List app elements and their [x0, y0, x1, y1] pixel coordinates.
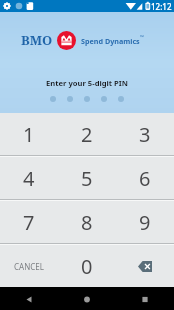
staticText: 12:12 — [151, 1, 172, 12]
staticText: 8 — [81, 209, 93, 236]
staticText: 1 — [23, 121, 35, 148]
button[interactable]: Home — [58, 287, 116, 310]
staticText: 7 — [23, 209, 35, 236]
button[interactable]: 9 — [116, 201, 174, 243]
button[interactable]: 1 — [0, 113, 58, 155]
button[interactable]: 7 — [0, 201, 58, 243]
button[interactable]: Back — [0, 287, 58, 310]
staticText: 6 — [139, 165, 151, 192]
staticText: 3 — [139, 121, 151, 148]
button[interactable]: 4 — [0, 157, 58, 199]
staticText: Enter your 5-digit PIN — [46, 78, 128, 88]
staticText: 5 — [81, 165, 93, 192]
button[interactable]: Recent apps — [116, 287, 174, 310]
button[interactable]: Backspace — [116, 245, 174, 287]
staticText: BMO — [21, 31, 53, 49]
staticText: CANCEL — [14, 261, 44, 272]
button[interactable]: 0 — [58, 245, 116, 287]
button[interactable]: 8 — [58, 201, 116, 243]
staticText: 0 — [81, 253, 93, 280]
staticText: ™ — [140, 34, 144, 41]
button[interactable]: 5 — [58, 157, 116, 199]
staticText: 9 — [139, 209, 151, 236]
staticText: 4 — [23, 165, 35, 192]
button[interactable]: 2 — [58, 113, 116, 155]
button[interactable]: CANCEL — [0, 245, 58, 287]
button[interactable]: 3 — [116, 113, 174, 155]
staticText: Spend Dynamics — [81, 36, 140, 46]
button[interactable]: 6 — [116, 157, 174, 199]
staticText: 2 — [81, 121, 93, 148]
